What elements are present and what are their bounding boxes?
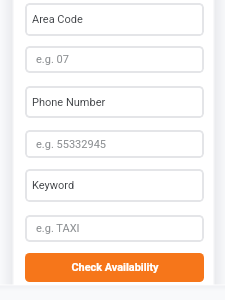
button[interactable]: Area Code [25, 3, 204, 36]
button[interactable]: Check Availability [25, 253, 204, 282]
staticText: Keyword [32, 179, 75, 192]
staticText: e.g. TAXI [36, 222, 80, 235]
staticText: e.g. 07 [36, 53, 69, 66]
button[interactable]: e.g. TAXI [25, 215, 204, 242]
staticText: Check Availability [71, 261, 159, 274]
button[interactable]: Keyword [25, 169, 204, 202]
staticText: Area Code [32, 13, 83, 26]
button[interactable]: e.g. 55332945 [25, 130, 204, 158]
staticText: e.g. 55332945 [36, 138, 106, 151]
staticText: Phone Number [32, 96, 106, 109]
button[interactable]: e.g. 07 [25, 46, 204, 73]
button[interactable]: Phone Number [25, 86, 204, 118]
